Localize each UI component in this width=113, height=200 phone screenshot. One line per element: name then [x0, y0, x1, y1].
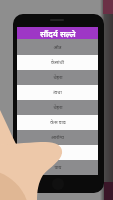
button[interactable]: चेहरा	[17, 70, 98, 85]
button[interactable]: ओठ	[17, 39, 98, 55]
button[interactable]: आरोग्य	[17, 130, 98, 145]
staticText: चेहरा	[53, 104, 63, 111]
staticText: चेहरा	[53, 74, 63, 81]
button[interactable]: केस वाढ	[17, 115, 98, 130]
button[interactable]: डोळे	[17, 145, 98, 160]
staticText: डोळे	[54, 149, 62, 156]
button[interactable]: पाय	[17, 160, 98, 175]
staticText: केस वाढ	[50, 119, 66, 126]
staticText: आरोग्य	[51, 134, 64, 141]
button[interactable]: केसांची	[17, 55, 98, 70]
staticText: केसांची	[51, 59, 64, 66]
staticText: सौंदर्य सल्ले	[40, 28, 76, 39]
button[interactable]: चेहरा	[17, 100, 98, 115]
staticText: त्वचा	[53, 89, 62, 96]
button[interactable]: सौंदर्य सल्ले	[17, 27, 98, 39]
button[interactable]: त्वचा	[17, 85, 98, 100]
staticText: ओठ	[53, 44, 62, 51]
staticText: पाय	[54, 164, 62, 171]
